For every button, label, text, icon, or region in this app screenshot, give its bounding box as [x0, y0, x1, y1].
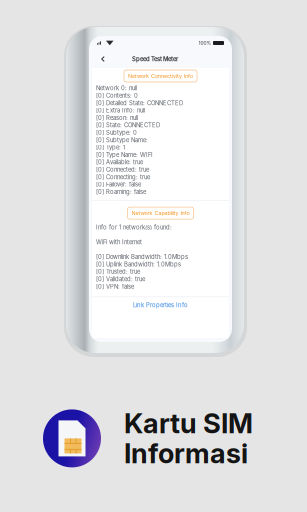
- staticText: [0] Reason: null: [96, 114, 138, 121]
- button[interactable]: Back: [96, 52, 110, 66]
- staticText: Kartu SIM: [124, 407, 253, 440]
- staticText: [0] Extra Info: null: [96, 107, 145, 114]
- staticText: [0] Failover: false: [96, 181, 141, 188]
- staticText: [0] Subtype Name:: [96, 136, 148, 144]
- staticText: [0] Roaming: false: [96, 188, 146, 195]
- staticText: [0] VPN: false: [96, 283, 134, 290]
- staticText: Network Connectivity Info: [128, 73, 193, 79]
- button[interactable]: Network Capability Info: [127, 207, 193, 219]
- staticText: [0] Subtype: 0: [96, 129, 137, 136]
- staticText: [0] Contents: 0: [96, 92, 138, 99]
- staticText: [0] Downlink Bandwidth: 1.0Mbps: [96, 253, 188, 260]
- staticText: Link Properties Info: [133, 302, 188, 309]
- staticText: [0] Connecting: true: [96, 173, 150, 181]
- staticText: [0] Uplink Bandwidth: 1.0Mbps: [96, 261, 181, 268]
- staticText: [0] Type: 1: [96, 144, 125, 151]
- staticText: [0] Type Name: WIFI: [96, 151, 153, 158]
- staticText: [0] Available: true: [96, 159, 143, 166]
- staticText: WiFi with Internet: [96, 239, 142, 246]
- staticText: Info for 1 network(s) found:: [96, 224, 172, 231]
- staticText: [0] Validated: true: [96, 276, 145, 283]
- staticText: Network 0: null: [96, 85, 137, 92]
- staticText: 100%: [198, 40, 211, 46]
- staticText: [0] Trusted: true: [96, 268, 140, 275]
- staticText: [0] Detailed State: CONNECTED: [96, 99, 183, 107]
- staticText: Informasi: [124, 437, 248, 470]
- staticText: Network Capability Info: [131, 210, 189, 216]
- staticText: [0] State: CONNECTED: [96, 122, 160, 129]
- staticText: Speed Test Meter: [132, 55, 178, 63]
- button[interactable]: Link Properties Info: [92, 297, 229, 313]
- staticText: [0] Connected: true: [96, 166, 149, 173]
- button[interactable]: Network Connectivity Info: [124, 70, 197, 82]
